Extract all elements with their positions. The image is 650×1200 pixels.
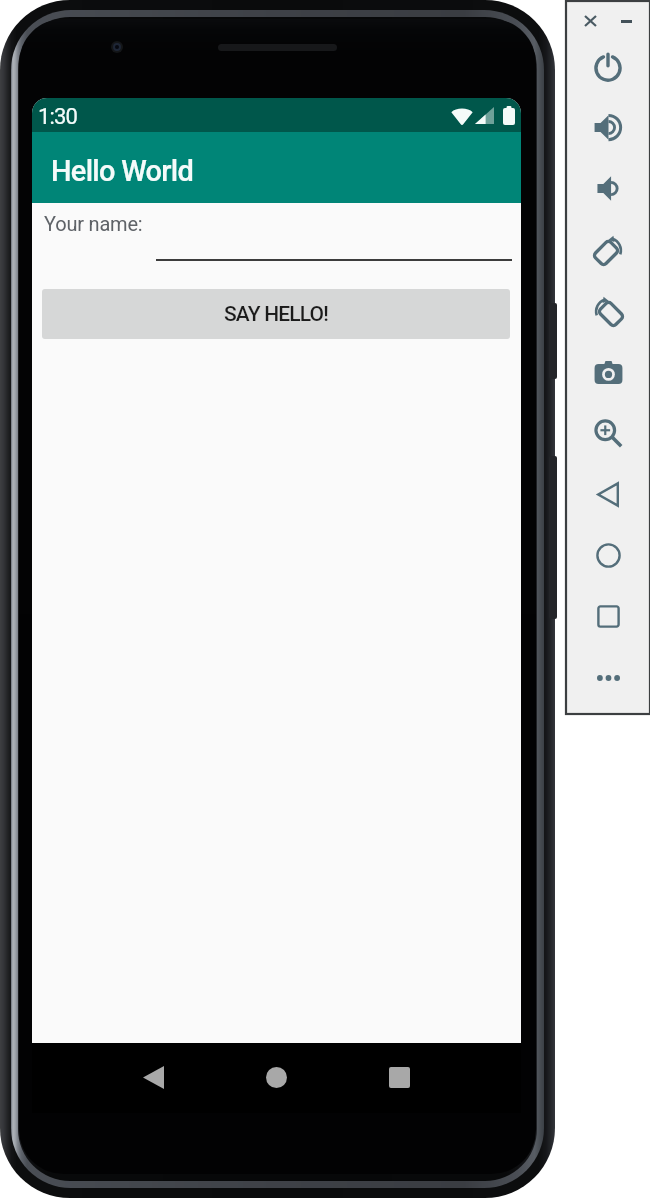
- button[interactable]: Minimize: [610, 5, 642, 37]
- button[interactable]: Overview: [586, 594, 630, 638]
- button[interactable]: Power: [586, 44, 630, 88]
- staticText: 1:30: [38, 104, 77, 130]
- button[interactable]: Home: [254, 1055, 298, 1099]
- button[interactable]: SAY HELLO!: [42, 289, 510, 339]
- button[interactable]: Volume up: [586, 105, 630, 149]
- button[interactable]: Zoom: [586, 411, 630, 455]
- button[interactable]: More: [586, 656, 630, 700]
- button[interactable]: Back: [131, 1055, 175, 1099]
- staticText: Hello World: [51, 154, 194, 188]
- button[interactable]: Your name text field: [156, 219, 512, 261]
- button[interactable]: Volume down: [586, 166, 630, 210]
- button[interactable]: Screenshot: [586, 350, 630, 394]
- button[interactable]: Close: [574, 5, 606, 37]
- button[interactable]: Back: [586, 472, 630, 516]
- staticText: SAY HELLO!: [224, 302, 328, 327]
- staticText: Your name:: [44, 212, 143, 235]
- button[interactable]: Rotate left: [586, 228, 630, 272]
- button[interactable]: Rotate right: [586, 289, 630, 333]
- button[interactable]: Recent apps: [377, 1055, 421, 1099]
- button[interactable]: Home: [586, 533, 630, 577]
